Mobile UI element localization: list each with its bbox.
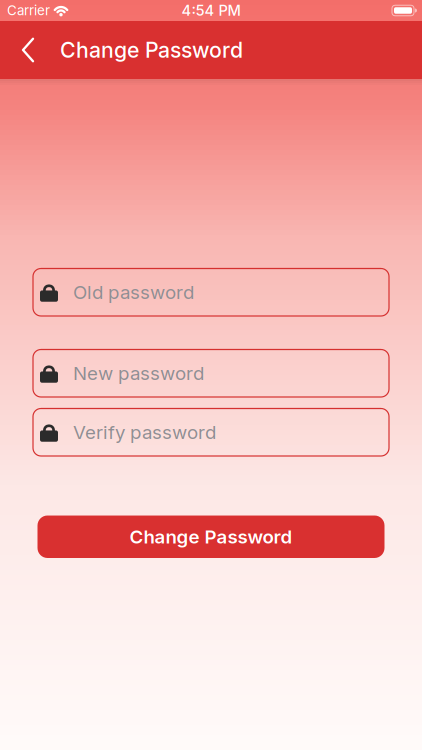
staticText: Change Password [60, 37, 243, 63]
staticText: Change Password [129, 526, 292, 548]
staticText: 4:54 PM [181, 2, 240, 19]
button[interactable]: Change Password [37, 515, 384, 558]
staticText: Verify password [73, 421, 216, 443]
button[interactable]: New password [33, 349, 389, 397]
button[interactable]: Back [0, 37, 60, 62]
button[interactable]: Old password [33, 268, 389, 316]
button[interactable]: Verify password [33, 408, 389, 456]
staticText: New password [73, 362, 204, 384]
staticText: Old password [73, 281, 194, 303]
staticText: Carrier [7, 3, 50, 18]
